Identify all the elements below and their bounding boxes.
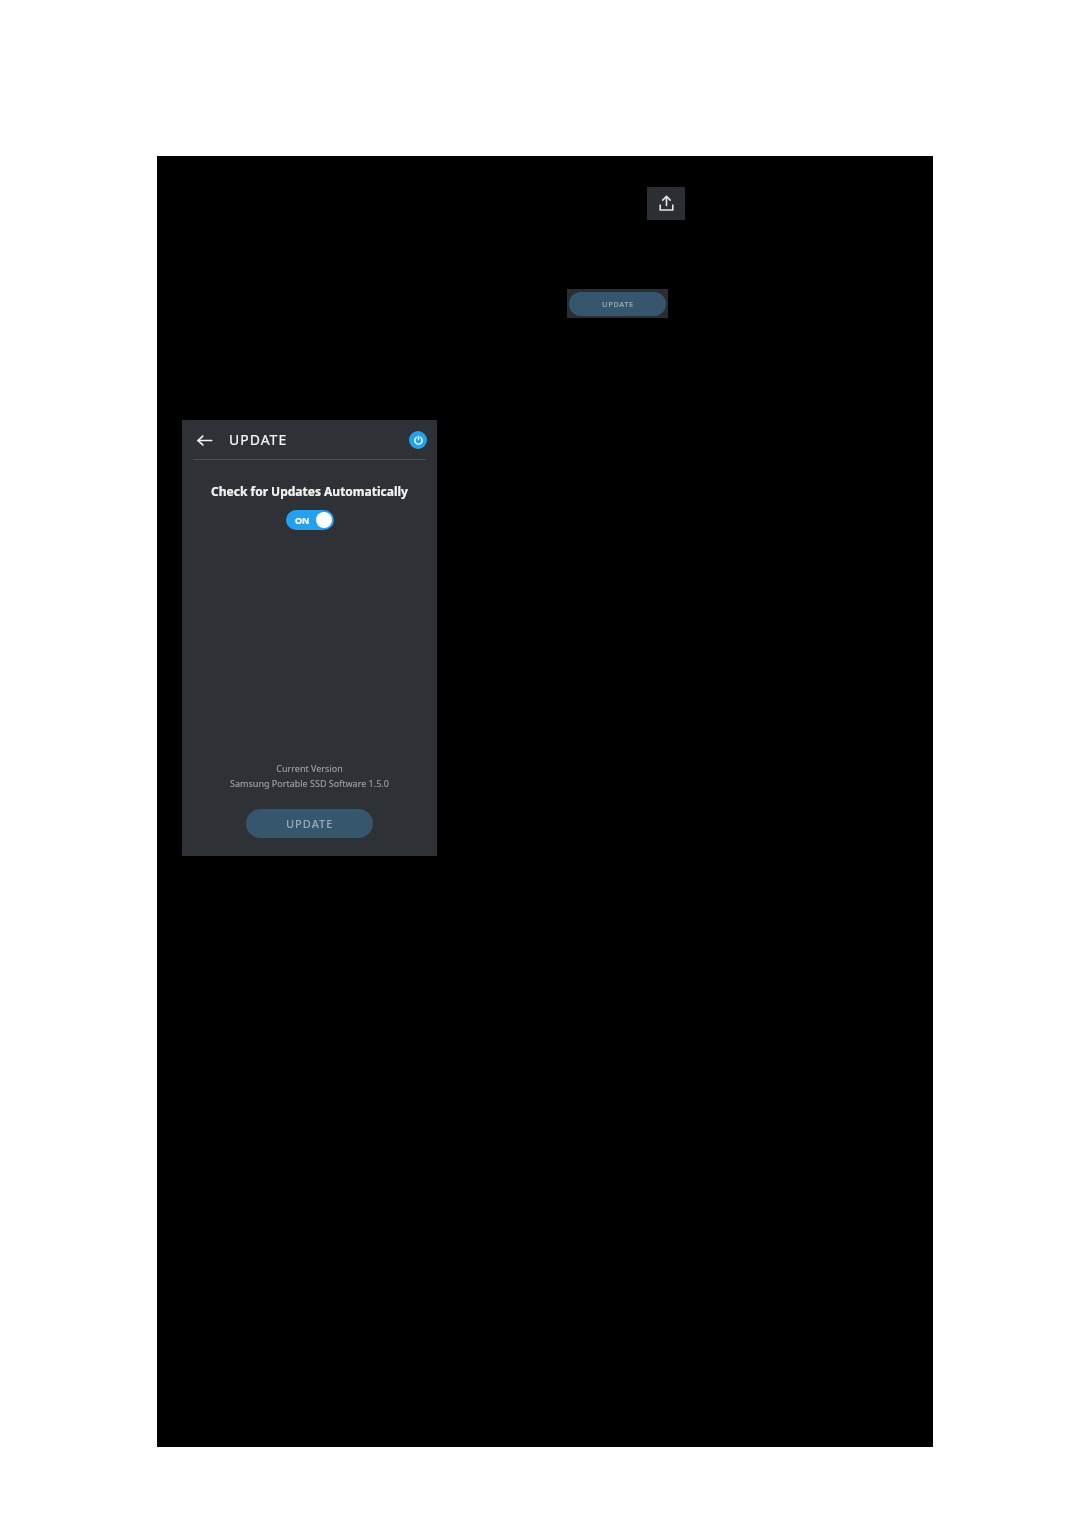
staticText: UPDATE [286,816,334,831]
staticText: UPDATE [602,299,634,309]
button[interactable]: Back [190,426,218,454]
staticText: Samsung Portable SSD Software 1.5.0 [182,777,437,789]
button[interactable]: Refresh [409,431,427,449]
staticText: ON [295,514,310,526]
staticText: Check for Updates Automatically [182,483,437,499]
staticText: UPDATE [229,430,288,449]
button[interactable]: Export [647,187,685,220]
button[interactable]: ON [286,510,334,530]
staticText: Current Version [182,762,437,774]
button[interactable]: UPDATE [246,809,373,838]
button[interactable]: UPDATE [569,292,666,316]
